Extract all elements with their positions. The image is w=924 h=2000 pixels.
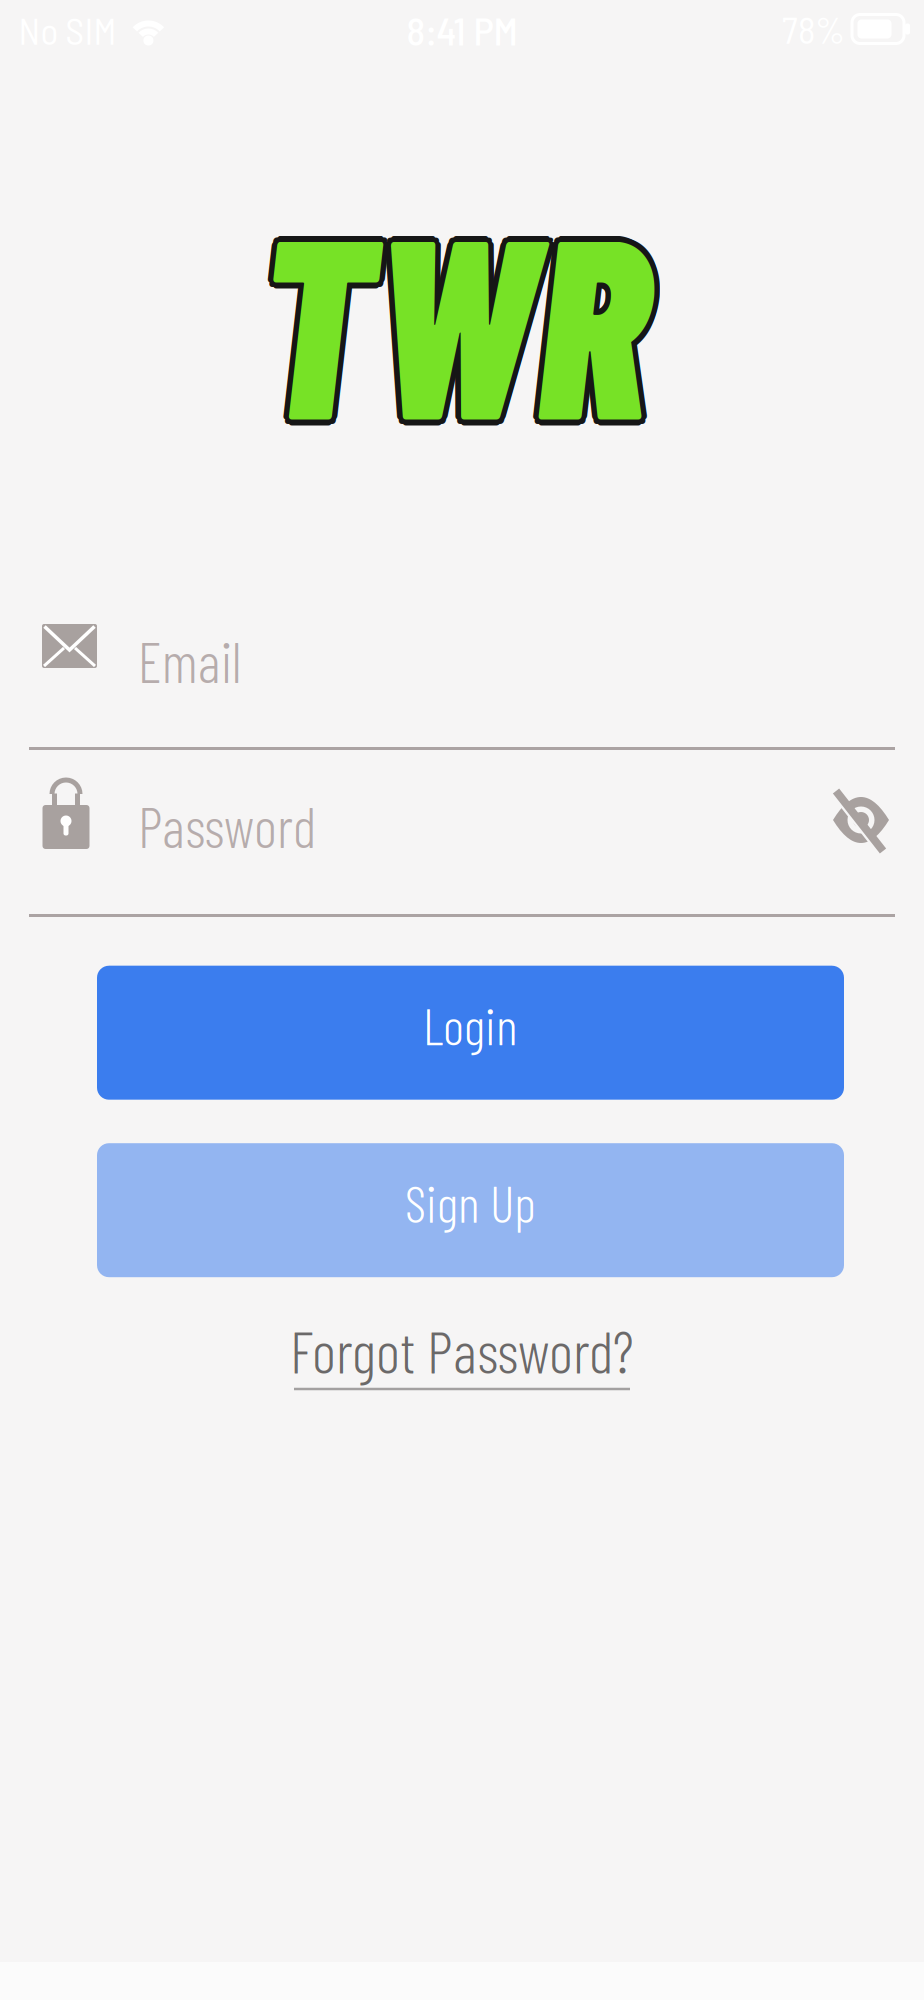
staticText: Email	[138, 627, 242, 694]
staticText: TWR	[239, 170, 660, 475]
button[interactable]	[829, 785, 893, 855]
staticText: Sign Up	[405, 1171, 536, 1233]
button[interactable]: Forgot Password?	[112, 1319, 812, 1403]
staticText: TWR	[243, 172, 664, 476]
staticText: TWR	[243, 160, 664, 464]
button[interactable]: Password	[29, 765, 895, 917]
button[interactable]: Email	[29, 610, 895, 750]
staticText: TWR	[243, 166, 664, 470]
staticText: TWR	[249, 166, 670, 470]
staticText: Login	[423, 994, 518, 1056]
staticText: TWR	[247, 170, 668, 475]
staticText: 8:41 PM	[406, 7, 517, 53]
staticText: 78%	[782, 7, 845, 51]
staticText: Forgot Password?	[290, 1315, 634, 1385]
staticText: TWR	[247, 161, 668, 466]
staticText: TWR	[239, 161, 660, 466]
staticText: No SIM	[18, 8, 116, 52]
button[interactable]: Sign Up	[97, 1143, 844, 1277]
staticText: Password	[138, 792, 316, 859]
staticText: TWR	[237, 166, 658, 470]
button[interactable]: Login	[97, 966, 844, 1100]
